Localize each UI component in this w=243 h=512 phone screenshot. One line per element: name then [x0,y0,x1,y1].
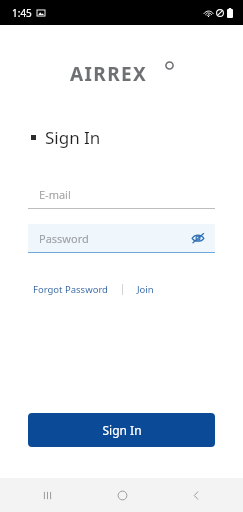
button[interactable]: Recent apps [34,482,60,508]
staticText: E-mail [39,187,71,202]
staticText: Join [137,283,154,296]
staticText: 1:45 [12,6,32,20]
button[interactable]: Show password [188,228,208,248]
button[interactable]: Back [183,482,209,508]
button[interactable]: Sign In [28,413,215,447]
button[interactable]: Password [28,224,215,253]
button[interactable]: Forgot Password [33,281,108,298]
button[interactable]: E-mail [28,181,215,209]
staticText: Password [39,231,89,246]
button[interactable]: Join [137,281,154,298]
staticText: Sign In [102,422,142,438]
staticText: Forgot Password [33,283,108,296]
staticText: Sign In [45,126,101,149]
button[interactable]: Home [109,482,135,508]
staticText: AIRREX [70,61,148,87]
